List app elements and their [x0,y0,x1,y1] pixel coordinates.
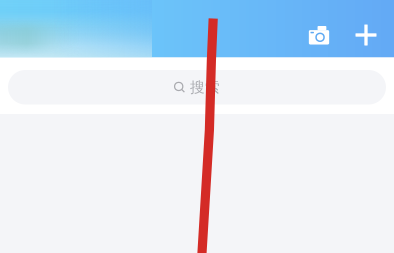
button[interactable]: Camera [295,11,343,55]
button[interactable]: 搜索 [8,70,386,104]
button[interactable]: Add [343,11,387,55]
staticText: 搜索 [190,78,220,96]
